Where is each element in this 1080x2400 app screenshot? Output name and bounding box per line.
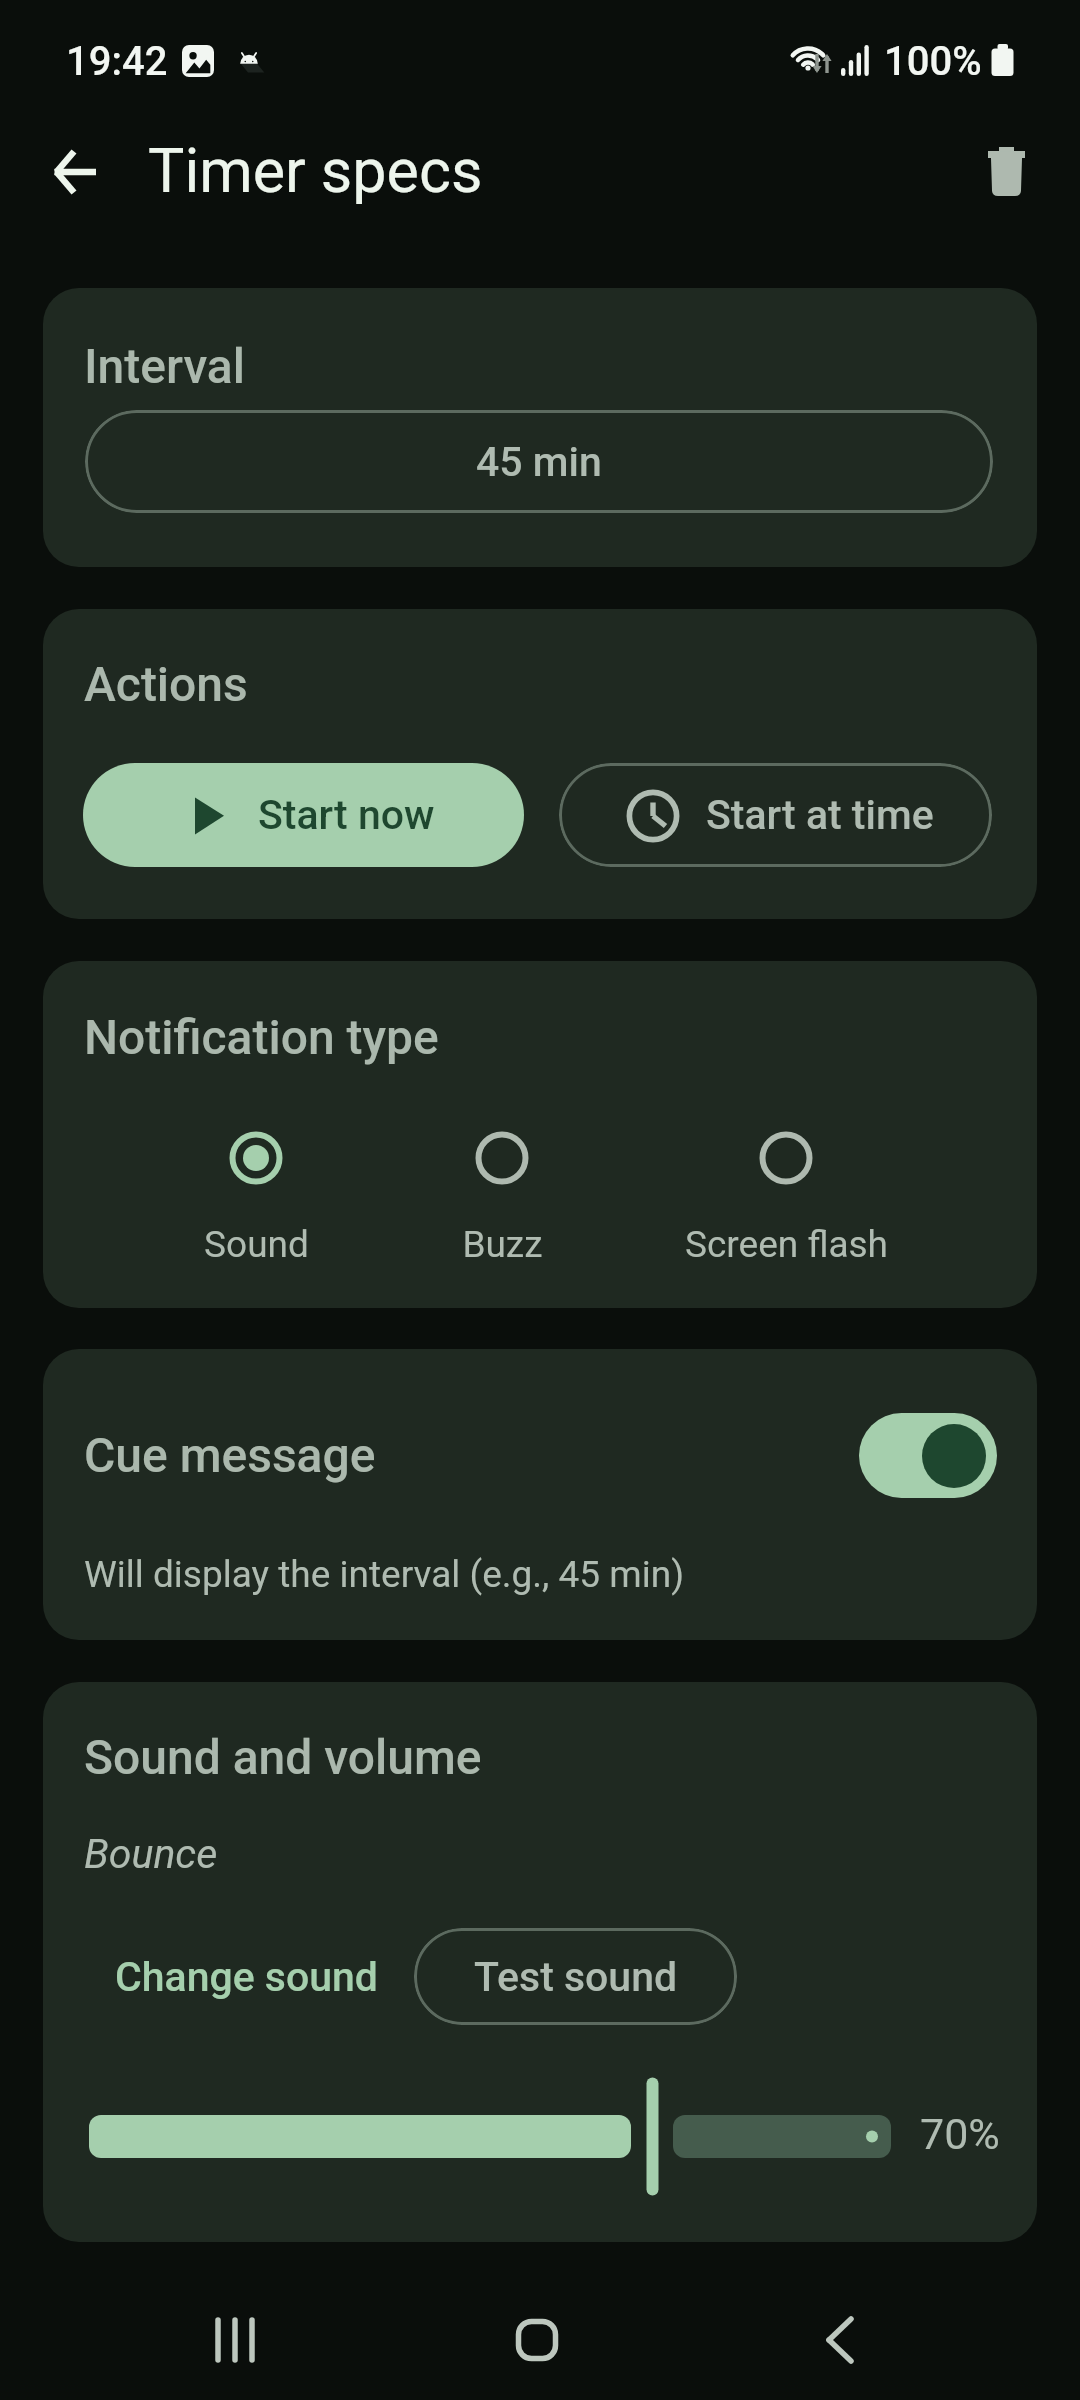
- staticText: Buzz: [462, 1223, 543, 1266]
- button[interactable]: Sound: [131, 1131, 381, 1266]
- staticText: Interval: [84, 338, 245, 394]
- button[interactable]: 45 min: [85, 410, 993, 513]
- button[interactable]: Start at time: [559, 763, 992, 867]
- button[interactable]: Screen flash: [661, 1131, 911, 1266]
- staticText: Screen flash: [685, 1223, 888, 1266]
- button[interactable]: Recent apps: [180, 2285, 290, 2395]
- staticText: Change sound: [115, 1953, 378, 2001]
- staticText: Actions: [84, 656, 248, 712]
- button[interactable]: Back: [785, 2285, 895, 2395]
- button[interactable]: Home: [482, 2285, 592, 2395]
- staticText: Cue message: [84, 1427, 376, 1483]
- staticText: Timer specs: [148, 135, 483, 206]
- staticText: Notification type: [84, 1009, 439, 1065]
- staticText: Start now: [258, 791, 435, 839]
- staticText: Will display the interval (e.g., 45 min): [84, 1553, 685, 1596]
- staticText: 70%: [920, 2109, 1000, 2159]
- button[interactable]: Change sound: [79, 1928, 414, 2025]
- button[interactable]: Toggle cue message: [859, 1413, 997, 1498]
- staticText: Sound and volume: [84, 1729, 482, 1785]
- staticText: 45 min: [476, 438, 602, 486]
- button[interactable]: Back: [39, 136, 111, 208]
- staticText: 19:42: [66, 38, 168, 85]
- staticText: Test sound: [474, 1953, 678, 2001]
- button[interactable]: Test sound: [414, 1928, 737, 2025]
- button[interactable]: Buzz: [377, 1131, 627, 1266]
- button[interactable]: Delete: [970, 132, 1042, 204]
- button[interactable]: Start now: [83, 763, 524, 867]
- staticText: 100%: [884, 38, 982, 85]
- staticText: Start at time: [706, 791, 934, 839]
- staticText: Sound: [204, 1223, 309, 1266]
- staticText: Bounce: [84, 1830, 218, 1878]
